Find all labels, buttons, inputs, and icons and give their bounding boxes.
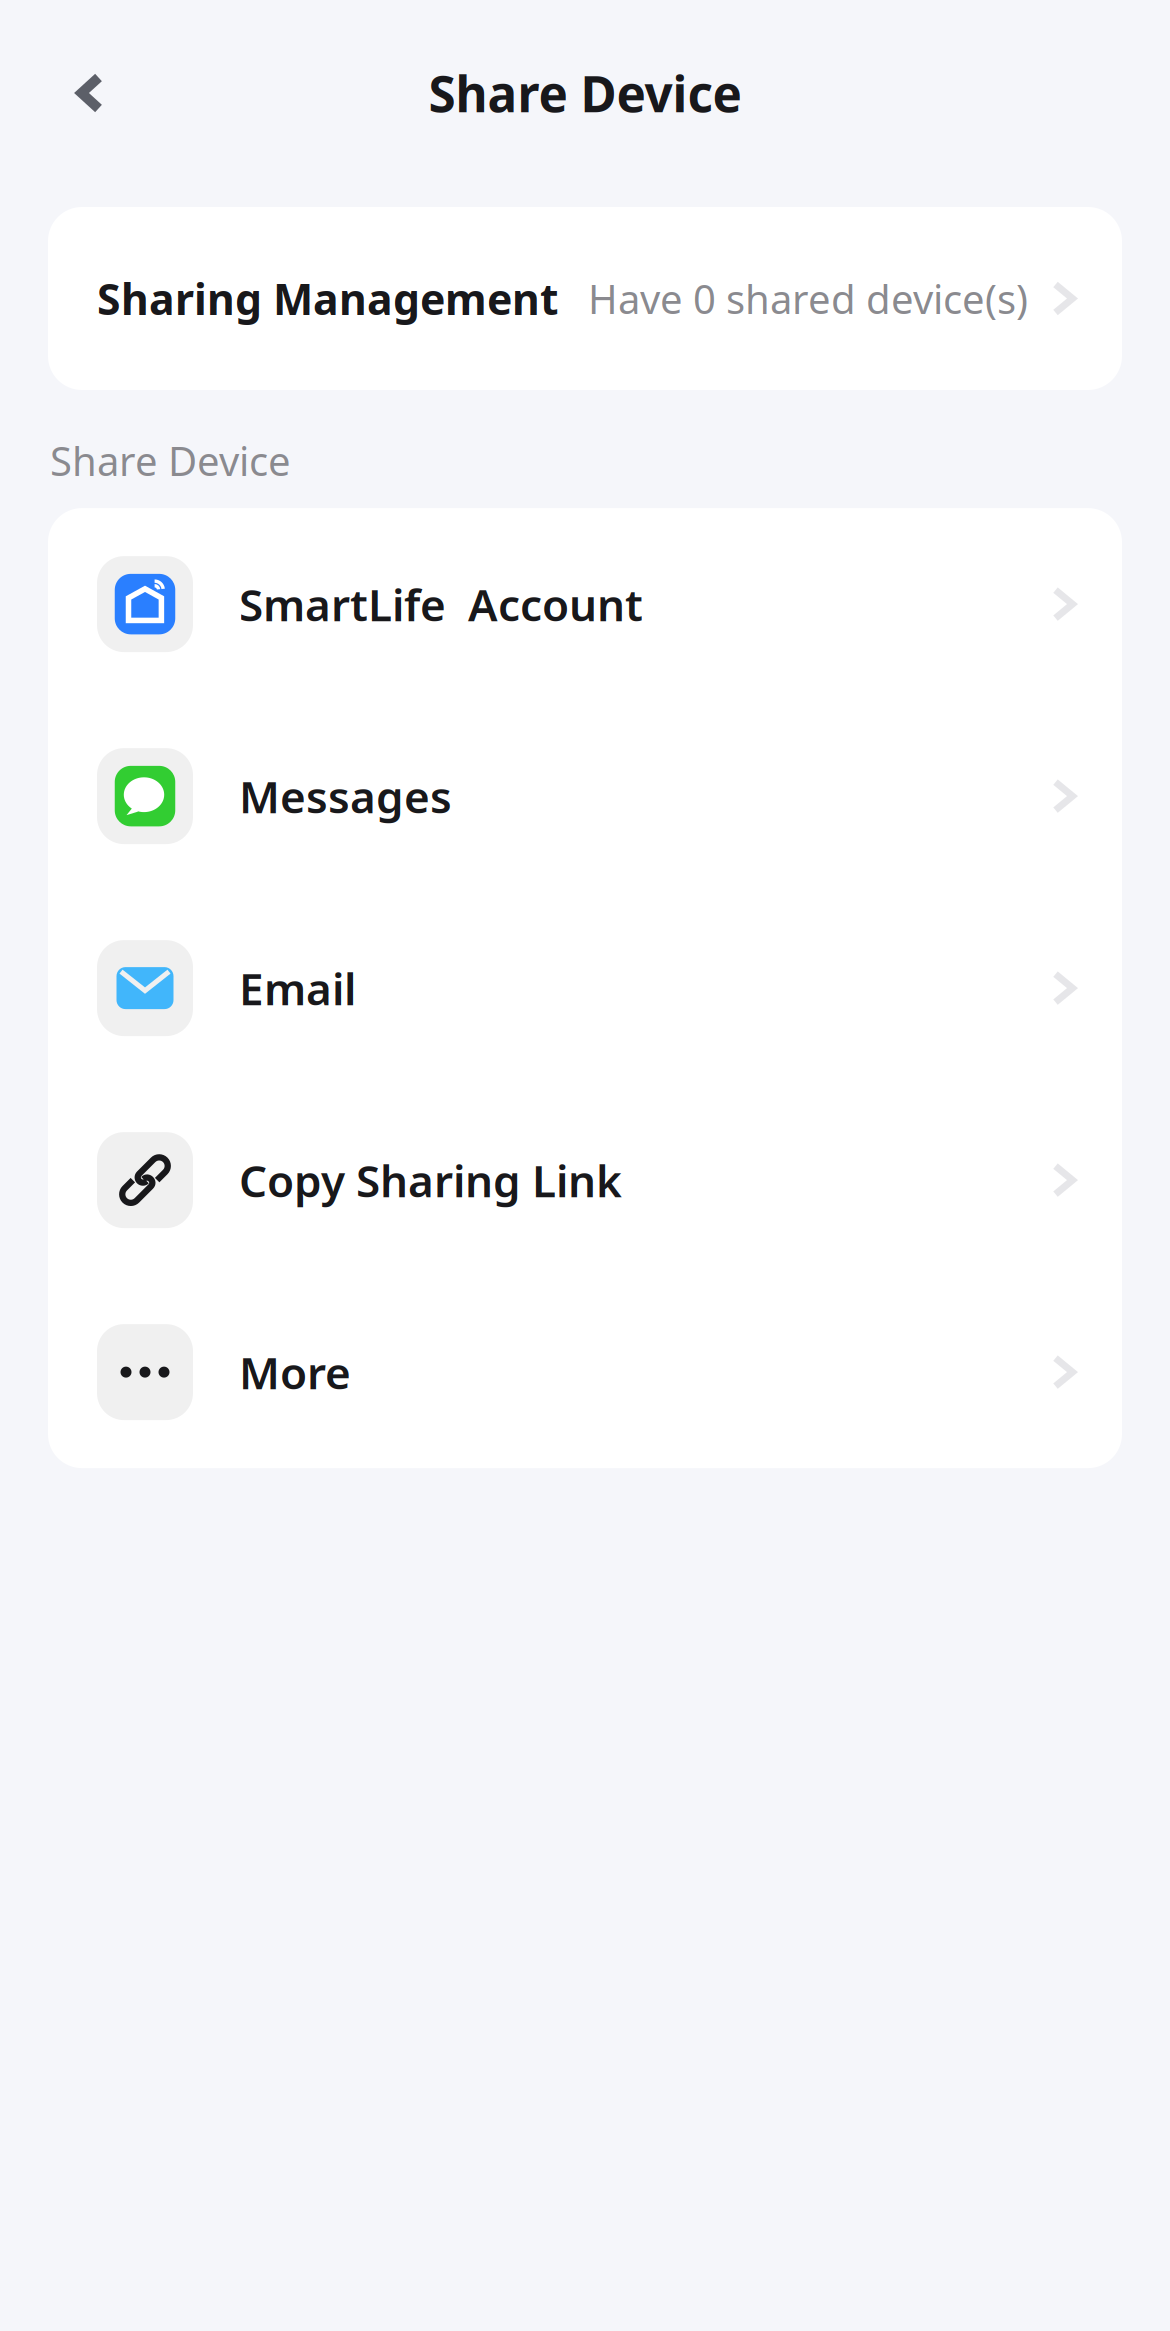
button[interactable]: Email <box>48 892 1122 1084</box>
staticText: Have 0 shared device(s) <box>588 272 1028 325</box>
button[interactable]: SmartLife Account <box>48 508 1122 700</box>
staticText: Messages <box>239 767 452 825</box>
button[interactable]: Messages <box>48 700 1122 892</box>
button[interactable]: Copy Sharing Link <box>48 1084 1122 1276</box>
staticText: Copy Sharing Link <box>239 1151 622 1209</box>
staticText: More <box>239 1343 351 1401</box>
staticText: Share Device <box>50 434 291 487</box>
button[interactable]: More <box>48 1276 1122 1468</box>
button[interactable]: Back <box>46 49 134 137</box>
button[interactable]: Sharing Management <box>48 207 1122 390</box>
staticText: Email <box>239 959 356 1017</box>
staticText: Sharing Management <box>97 270 559 327</box>
staticText: SmartLife Account <box>239 575 643 633</box>
staticText: Share Device <box>428 60 741 126</box>
